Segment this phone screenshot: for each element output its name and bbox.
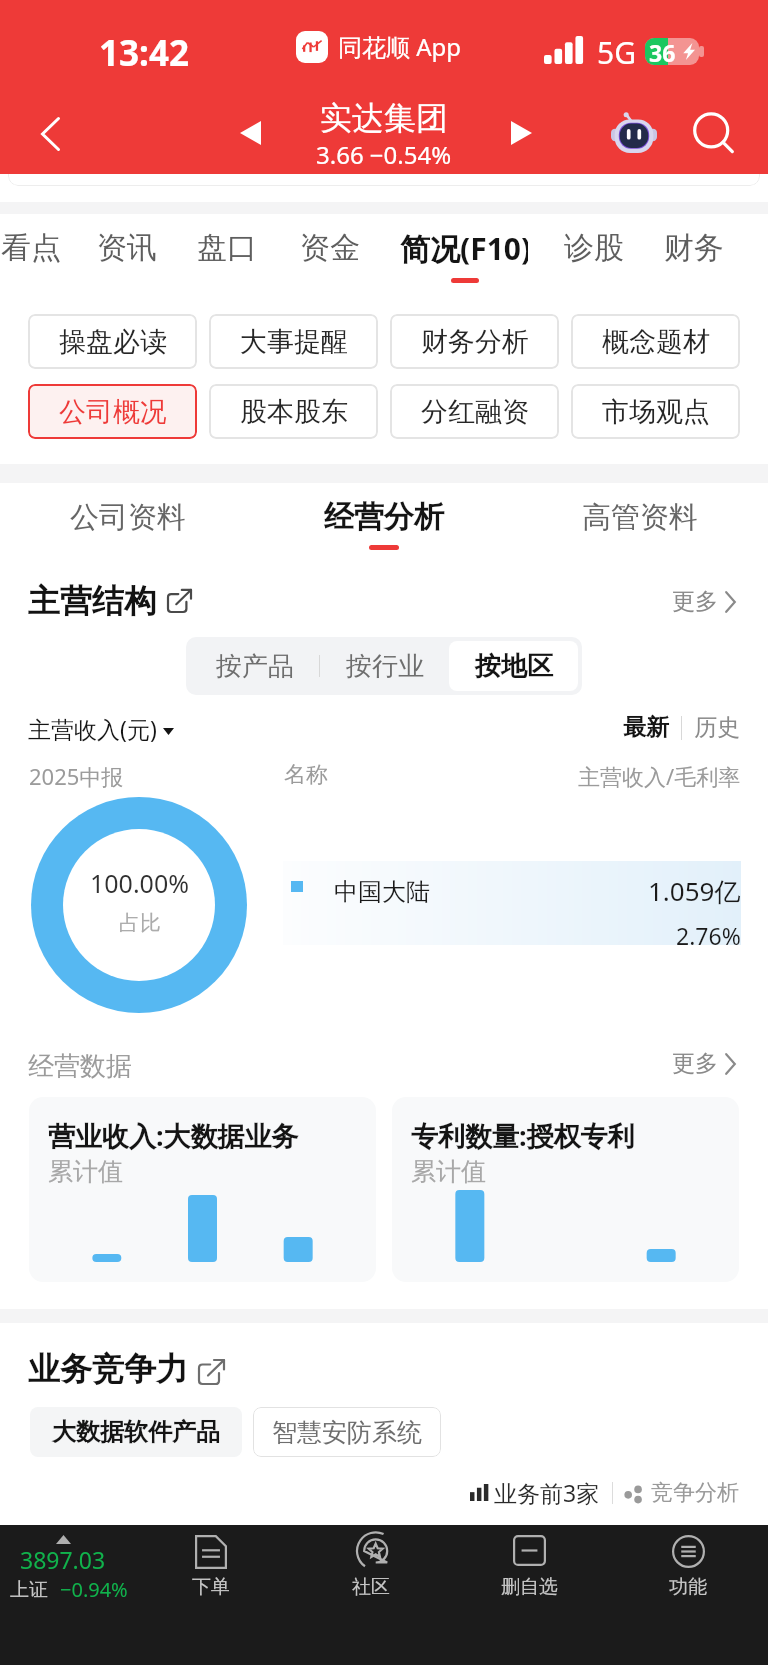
- staticText: 主营结构: [28, 581, 156, 621]
- staticText: 股本股东: [240, 395, 348, 429]
- staticText: 经营数据: [28, 1050, 132, 1083]
- button[interactable]: 财务分析: [390, 314, 559, 369]
- button[interactable]: 看点: [0, 214, 95, 294]
- button[interactable]: 更多: [672, 587, 736, 616]
- staticText: 资金: [300, 229, 360, 267]
- button[interactable]: AI assistant: [600, 90, 668, 174]
- staticText: 更多: [672, 1049, 718, 1078]
- staticText: 按产品: [216, 650, 294, 683]
- button[interactable]: Back: [8, 90, 92, 174]
- staticText: 100.00%: [90, 866, 189, 900]
- button[interactable]: 3897.03: [0, 1525, 126, 1615]
- staticText: 实达集团: [320, 98, 448, 138]
- staticText: 下单: [192, 1575, 230, 1599]
- button[interactable]: 智慧安防系统: [253, 1407, 441, 1457]
- staticText: 简况(F10): [400, 228, 528, 269]
- button[interactable]: 功能: [618, 1525, 758, 1625]
- button[interactable]: 按产品: [190, 641, 319, 691]
- button[interactable]: Next stock: [485, 90, 557, 174]
- staticText: 13:42: [99, 29, 189, 77]
- staticText: 中国大陆: [334, 877, 430, 907]
- staticText: 专利数量:授权专利: [411, 1117, 635, 1154]
- staticText: 业务前3家: [494, 1477, 600, 1508]
- staticText: 主营收入(元): [28, 713, 157, 744]
- staticText: 操盘必读: [59, 325, 167, 359]
- staticText: 名称: [284, 761, 328, 789]
- button[interactable]: Open main structure: [168, 589, 191, 612]
- staticText: 财务分析: [421, 325, 529, 359]
- staticText: 同花顺 App: [338, 30, 462, 63]
- staticText: 占比: [119, 910, 161, 936]
- staticText: 5G: [597, 32, 636, 73]
- button[interactable]: 最新: [623, 713, 669, 742]
- button[interactable]: 公司概况: [28, 384, 197, 439]
- button[interactable]: 资金: [266, 214, 394, 294]
- staticText: 上证: [10, 1578, 48, 1602]
- button[interactable]: 分红融资: [390, 384, 559, 439]
- button[interactable]: Open business competitiveness: [199, 1359, 224, 1384]
- staticText: 盘口: [197, 229, 257, 267]
- button[interactable]: 竞争分析: [624, 1479, 739, 1507]
- staticText: 市场观点: [602, 395, 710, 429]
- staticText: 竞争分析: [651, 1479, 739, 1507]
- button[interactable]: 删自选: [459, 1525, 599, 1625]
- staticText: 按地区: [475, 650, 553, 683]
- staticText: 分红融资: [421, 395, 529, 429]
- staticText: 按行业: [346, 650, 424, 683]
- button[interactable]: 资讯: [63, 214, 191, 294]
- button[interactable]: 历史: [694, 713, 740, 742]
- staticText: 经营分析: [324, 498, 444, 536]
- staticText: 更多: [672, 587, 718, 616]
- staticText: 诊股: [564, 229, 624, 267]
- button[interactable]: 按行业: [320, 641, 449, 691]
- staticText: 大事提醒: [240, 325, 348, 359]
- button[interactable]: 股本股东: [209, 384, 378, 439]
- button[interactable]: 操盘必读: [28, 314, 197, 369]
- button[interactable]: 主营收入(元): [28, 713, 174, 744]
- staticText: 智慧安防系统: [272, 1417, 422, 1448]
- staticText: 营业收入:大数据业务: [48, 1117, 299, 1154]
- staticText: 3897.03: [20, 1544, 106, 1575]
- button[interactable]: 下单: [141, 1525, 281, 1625]
- button[interactable]: 高管资料: [520, 483, 760, 563]
- staticText: 公司资料: [70, 499, 186, 536]
- staticText: 功能: [669, 1575, 707, 1599]
- button[interactable]: 按地区: [449, 641, 578, 691]
- button[interactable]: 经营分析: [264, 483, 504, 563]
- button[interactable]: 概念题材: [571, 314, 740, 369]
- staticText: 大数据软件产品: [52, 1417, 220, 1447]
- button[interactable]: 营业收入:大数据业务: [29, 1097, 376, 1282]
- staticText: 2025中报: [29, 761, 124, 791]
- staticText: 高管资料: [582, 499, 698, 536]
- button[interactable]: 简况(F10): [400, 214, 528, 294]
- button[interactable]: 盘口: [163, 214, 291, 294]
- button[interactable]: 更多: [672, 1049, 736, 1078]
- staticText: 2.76%: [676, 920, 741, 951]
- staticText: 主营收入/毛利率: [578, 761, 741, 791]
- staticText: 36: [649, 38, 676, 64]
- button[interactable]: 财务: [630, 214, 758, 294]
- staticText: 累计值: [48, 1156, 123, 1187]
- staticText: 累计值: [411, 1156, 486, 1187]
- button[interactable]: 诊股: [530, 214, 658, 294]
- button[interactable]: 社区: [301, 1525, 441, 1625]
- staticText: 社区: [352, 1575, 390, 1599]
- staticText: 公司概况: [59, 395, 167, 429]
- staticText: 财务: [664, 229, 724, 267]
- button[interactable]: 市场观点: [571, 384, 740, 439]
- button[interactable]: 大数据软件产品: [30, 1407, 242, 1457]
- button[interactable]: Search: [680, 90, 748, 174]
- staticText: 业务竞争力: [28, 1349, 188, 1389]
- staticText: 资讯: [97, 229, 157, 267]
- staticText: 1.059亿: [648, 873, 741, 909]
- button[interactable]: 公司资料: [8, 483, 248, 563]
- button[interactable]: 大事提醒: [209, 314, 378, 369]
- staticText: 看点: [1, 229, 61, 267]
- button[interactable]: 业务前3家: [470, 1477, 600, 1508]
- button[interactable]: 专利数量:授权专利: [392, 1097, 739, 1282]
- button[interactable]: 中国大陆: [283, 861, 741, 945]
- staticText: 3.66 −0.54%: [316, 138, 452, 171]
- staticText: 概念题材: [602, 325, 710, 359]
- staticText: −0.94%: [60, 1576, 128, 1603]
- button[interactable]: Previous stock: [214, 90, 286, 174]
